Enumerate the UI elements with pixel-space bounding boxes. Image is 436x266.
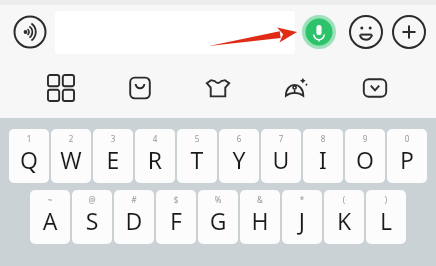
button[interactable]: ( xyxy=(324,190,364,244)
staticText: L xyxy=(366,205,406,236)
button[interactable]: AI assistant xyxy=(273,65,319,111)
button[interactable]: ) xyxy=(366,190,406,244)
button[interactable]: 5 xyxy=(177,129,217,183)
staticText: # xyxy=(114,194,154,205)
staticText: A xyxy=(30,205,70,236)
button[interactable]: 8 xyxy=(303,129,343,183)
button[interactable]: ~ xyxy=(30,190,70,244)
staticText: U xyxy=(261,144,301,175)
button[interactable]: 3 xyxy=(93,129,133,183)
staticText: P xyxy=(387,144,427,175)
staticText: S xyxy=(72,205,112,236)
staticText: J xyxy=(282,205,322,236)
button[interactable]: * xyxy=(282,190,322,244)
staticText: * xyxy=(282,194,322,205)
staticText: 9 xyxy=(345,133,385,144)
button[interactable]: & xyxy=(240,190,280,244)
staticText: @ xyxy=(72,194,112,205)
staticText: K xyxy=(324,205,364,236)
button[interactable]: 0 xyxy=(387,129,427,183)
staticText: 4 xyxy=(135,133,175,144)
staticText: 6 xyxy=(219,133,259,144)
staticText: 7 xyxy=(261,133,301,144)
button[interactable]: Clothing xyxy=(195,65,241,111)
button[interactable]: Voice playback xyxy=(13,15,47,49)
button[interactable]: @ xyxy=(72,190,112,244)
staticText: G xyxy=(198,205,238,236)
staticText: ) xyxy=(366,194,406,205)
button[interactable]: 4 xyxy=(135,129,175,183)
staticText: 1 xyxy=(9,133,49,144)
staticText: 8 xyxy=(303,133,343,144)
button[interactable] xyxy=(55,11,295,54)
staticText: Q xyxy=(9,144,49,175)
staticText: & xyxy=(240,194,280,205)
button[interactable]: Emoji xyxy=(348,14,384,50)
staticText: 0 xyxy=(387,133,427,144)
button[interactable]: 1 xyxy=(9,129,49,183)
button[interactable]: 7 xyxy=(261,129,301,183)
button[interactable]: 2 xyxy=(51,129,91,183)
staticText: E xyxy=(93,144,133,175)
staticText: 2 xyxy=(51,133,91,144)
button[interactable]: # xyxy=(114,190,154,244)
staticText: 5 xyxy=(177,133,217,144)
staticText: F xyxy=(156,205,196,236)
staticText: ( xyxy=(324,194,364,205)
staticText: T xyxy=(177,144,217,175)
staticText: H xyxy=(240,205,280,236)
staticText: W xyxy=(51,144,91,175)
button[interactable]: Apps xyxy=(38,65,84,111)
staticText: R xyxy=(135,144,175,175)
staticText: 3 xyxy=(93,133,133,144)
staticText: ~ xyxy=(30,194,70,205)
staticText: % xyxy=(198,194,238,205)
button[interactable]: Collapse xyxy=(352,65,398,111)
staticText: $ xyxy=(156,194,196,205)
staticText: O xyxy=(345,144,385,175)
staticText: Y xyxy=(219,144,259,175)
staticText: D xyxy=(114,205,154,236)
button[interactable]: Voice input xyxy=(300,13,338,51)
button[interactable]: % xyxy=(198,190,238,244)
button[interactable]: 9 xyxy=(345,129,385,183)
button[interactable]: Shopping xyxy=(117,65,163,111)
button[interactable]: 6 xyxy=(219,129,259,183)
button[interactable]: $ xyxy=(156,190,196,244)
staticText: I xyxy=(303,144,343,175)
button[interactable]: Add xyxy=(391,14,427,50)
